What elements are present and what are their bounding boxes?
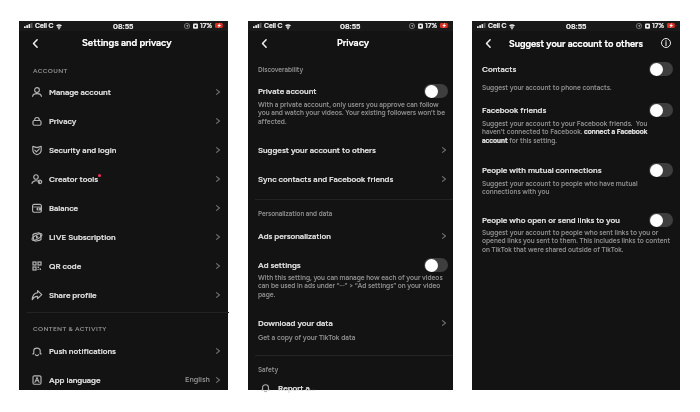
staticText: QR code — [49, 261, 82, 271]
staticText: With this setting, you can manage how ea… — [258, 273, 447, 299]
staticText: Push notifications — [49, 346, 116, 356]
staticText: Creator tools — [49, 174, 98, 184]
button[interactable]: Toggle — [649, 62, 673, 76]
button[interactable]: Toggle — [424, 84, 448, 98]
button[interactable]: Push notifications — [19, 336, 228, 365]
staticText: Sync contacts and Facebook friends — [258, 174, 394, 184]
staticText: English — [185, 375, 210, 384]
button[interactable]: Back — [255, 34, 273, 52]
button[interactable]: Manage account — [19, 77, 228, 106]
staticText: Balance — [49, 203, 79, 213]
button[interactable]: Toggle — [649, 103, 673, 117]
staticText: Facebook friends — [482, 105, 547, 115]
staticText: People with mutual connections — [482, 165, 602, 175]
button[interactable]: QR code — [19, 251, 228, 280]
staticText: With a private account, only users you a… — [258, 100, 447, 126]
staticText: Cell C — [264, 22, 283, 30]
staticText: CONTENT & ACTIVITY — [33, 325, 107, 333]
staticText: Download your data — [258, 318, 333, 328]
staticText: Ads personalization — [258, 231, 331, 241]
staticText: Suggest your account to people who sent … — [482, 228, 674, 254]
staticText: People who open or send links to you — [482, 215, 620, 225]
staticText: Ad settings — [258, 260, 301, 270]
staticText: 17% — [425, 22, 438, 30]
button[interactable]: App language — [19, 365, 228, 394]
staticText: Cell C — [35, 22, 54, 30]
staticText: App language — [49, 375, 101, 385]
staticText: Private account — [258, 86, 317, 96]
button[interactable]: Security and login — [19, 135, 228, 164]
button[interactable]: Toggle — [424, 258, 448, 272]
staticText: Suggest your account to others — [509, 38, 643, 49]
staticText: ACCOUNT — [33, 67, 68, 75]
staticText: Share profile — [49, 290, 97, 300]
staticText: Get a copy of your TikTok data — [258, 333, 356, 341]
staticText: 17% — [200, 22, 213, 30]
staticText: 08:55 — [113, 22, 134, 31]
staticText: Discoverability — [258, 66, 304, 74]
staticText: Manage account — [49, 87, 111, 97]
staticText: LIVE Subscription — [49, 232, 116, 242]
button[interactable]: Sync contacts and Facebook friends — [248, 165, 453, 193]
button[interactable]: LIVE Subscription — [19, 222, 228, 251]
staticText: Contacts — [482, 64, 517, 74]
staticText: Suggest your account to your Facebook fr… — [482, 119, 658, 145]
staticText: 08:55 — [340, 22, 361, 31]
button[interactable]: Back — [26, 34, 44, 52]
button[interactable]: Ads personalization — [248, 222, 453, 250]
staticText: Personalization and data — [258, 210, 333, 218]
button[interactable]: Privacy — [19, 106, 228, 135]
staticText: 17% — [652, 22, 665, 30]
staticText: Suggest your account to people who have … — [482, 179, 674, 196]
staticText: 08:55 — [566, 22, 587, 31]
button[interactable]: Toggle — [649, 213, 673, 227]
button[interactable]: Balance — [19, 193, 228, 222]
staticText: Privacy — [49, 116, 77, 126]
staticText: Cell C — [488, 22, 507, 30]
staticText: Security and login — [49, 145, 117, 155]
staticText: Report a... — [278, 383, 316, 393]
staticText: Suggest your account to phone contacts. — [482, 83, 612, 91]
button[interactable]: Info — [659, 36, 673, 50]
button[interactable]: Creator tools — [19, 164, 228, 193]
button[interactable]: Suggest your account to others — [248, 136, 453, 164]
staticText: Safety — [258, 366, 279, 374]
button[interactable]: Share profile — [19, 280, 228, 309]
staticText: Settings and privacy — [82, 37, 172, 49]
button[interactable]: Back — [479, 34, 497, 52]
button[interactable]: Toggle — [649, 163, 673, 177]
staticText: Suggest your account to others — [258, 145, 376, 155]
staticText: Privacy — [337, 37, 370, 49]
